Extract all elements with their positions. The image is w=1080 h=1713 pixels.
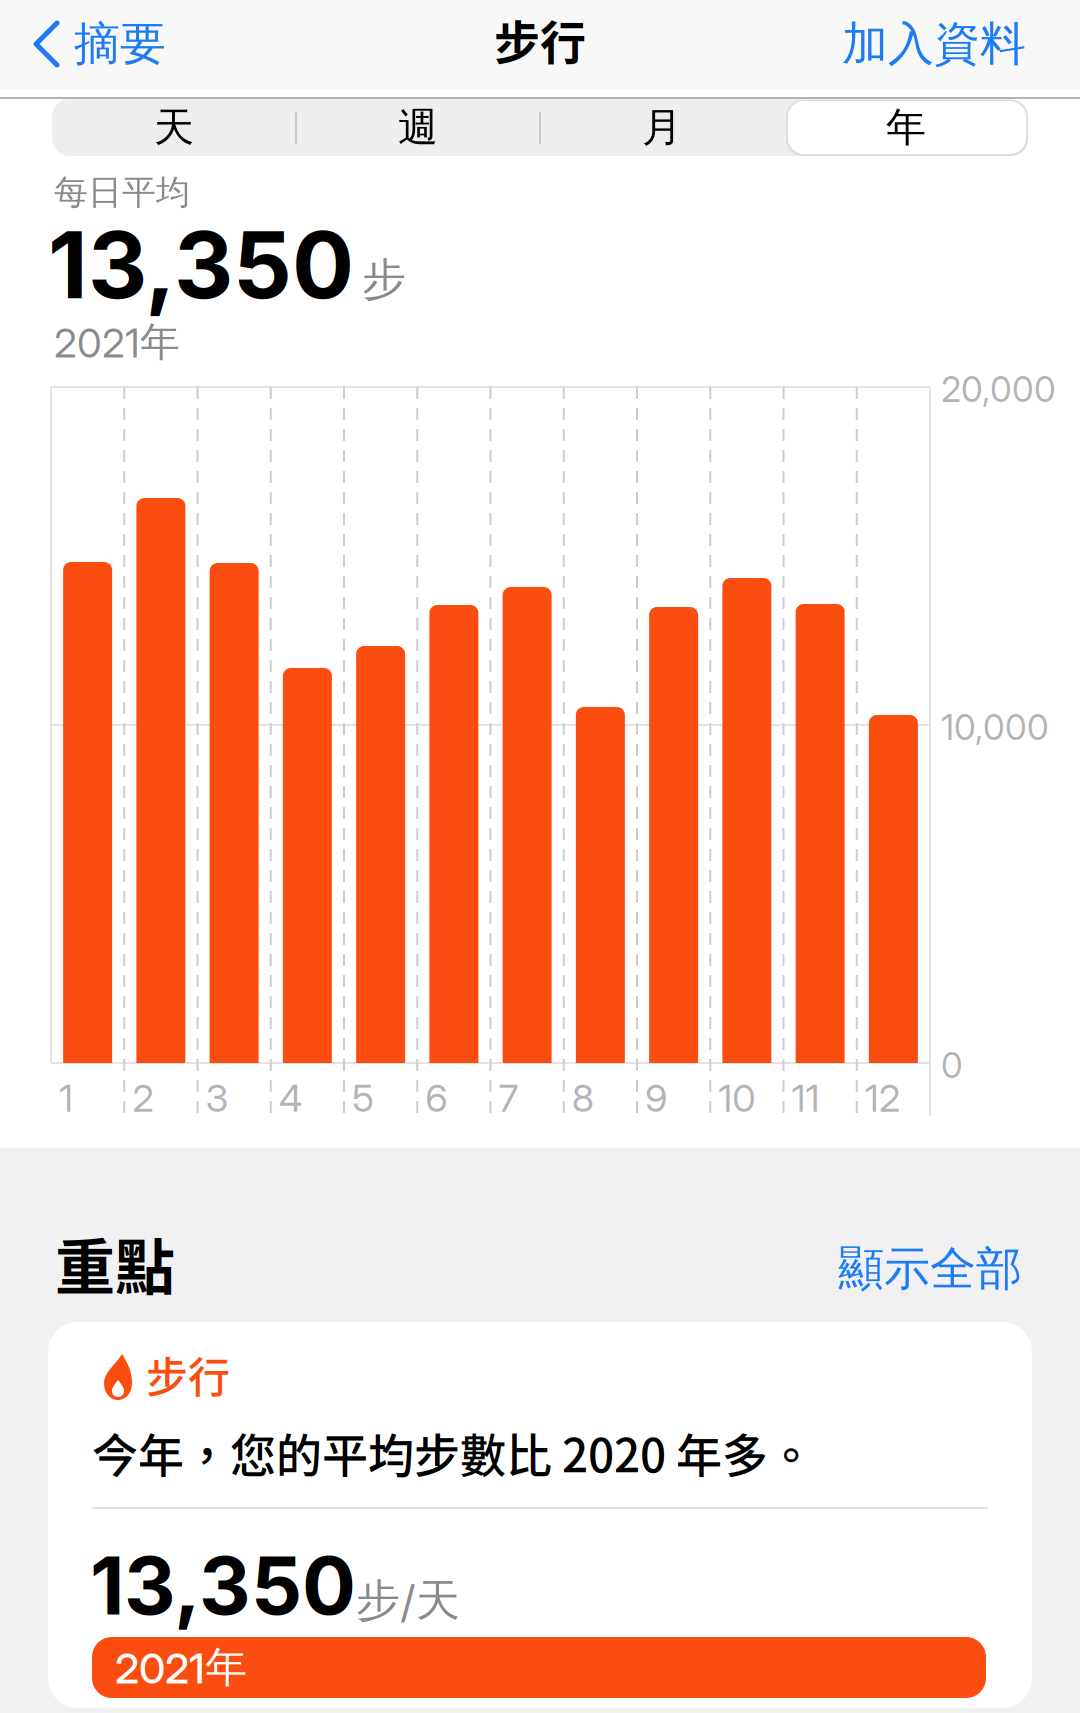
staticText: 步 <box>362 252 406 307</box>
button[interactable]: 天 <box>52 99 296 156</box>
button[interactable]: 步行 <box>48 1322 1032 1713</box>
staticText: 今年，您的平均步數比 2020 年多。 <box>92 1419 814 1486</box>
staticText: 4 <box>279 1075 303 1121</box>
staticText: 20,000 <box>941 368 1056 410</box>
staticText: 顯示全部 <box>838 1240 1022 1298</box>
staticText: 12 <box>865 1075 901 1121</box>
staticText: 年 <box>886 102 926 153</box>
staticText: 2021年 <box>115 1641 247 1694</box>
staticText: 天 <box>154 102 194 153</box>
button[interactable]: 顯示全部 <box>838 1240 1080 1298</box>
staticText: 11 <box>791 1075 819 1121</box>
staticText: 13,350 <box>48 209 354 320</box>
button[interactable]: 週 <box>296 99 540 156</box>
staticText: 週 <box>398 102 438 153</box>
staticText: 步/天 <box>356 1573 460 1628</box>
staticText: 10,000 <box>941 706 1049 748</box>
staticText: 0 <box>941 1044 963 1086</box>
staticText: 1 <box>59 1075 73 1121</box>
button[interactable]: 月 <box>540 99 784 156</box>
button[interactable]: 摘要 <box>0 0 166 73</box>
staticText: 9 <box>645 1075 667 1121</box>
staticText: 步行 <box>494 6 586 73</box>
staticText: 5 <box>352 1075 374 1121</box>
staticText: 步行 <box>146 1344 230 1405</box>
staticText: 7 <box>498 1075 518 1121</box>
staticText: 摘要 <box>74 15 166 73</box>
staticText: 3 <box>205 1075 228 1121</box>
staticText: 每日平均 <box>54 171 190 214</box>
staticText: 13,350 <box>90 1537 356 1634</box>
staticText: 8 <box>572 1075 594 1121</box>
button[interactable]: 加入資料 <box>842 0 1080 73</box>
staticText: 2021年 <box>54 317 180 367</box>
staticText: 6 <box>425 1075 447 1121</box>
staticText: 加入資料 <box>842 15 1026 73</box>
staticText: 重點 <box>55 1220 175 1307</box>
button[interactable]: 年 <box>784 99 1028 156</box>
staticText: 月 <box>642 102 682 153</box>
staticText: 10 <box>718 1075 755 1121</box>
staticText: 2 <box>132 1075 154 1121</box>
